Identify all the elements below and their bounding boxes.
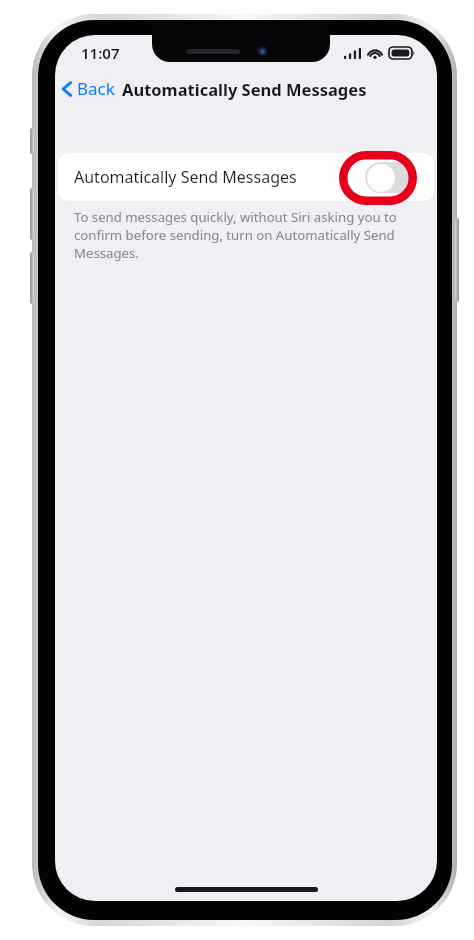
staticText: Automatically Send Messages [122,78,367,100]
staticText: Automatically Send Messages [74,166,297,188]
button[interactable]: Automatically Send Messages toggle, off [365,162,416,193]
staticText: 11:07 [81,43,120,63]
button[interactable]: Back [57,73,119,104]
button[interactable]: Automatically Send Messages [58,153,434,201]
staticText: To send messages quickly, without Siri a… [74,208,415,262]
staticText: Back [77,77,115,100]
